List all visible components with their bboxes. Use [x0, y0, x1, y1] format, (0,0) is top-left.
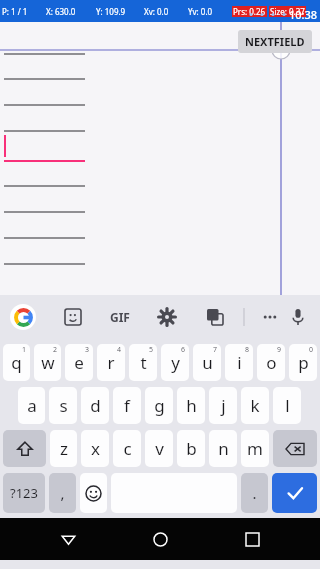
button[interactable]: d	[81, 387, 109, 424]
button[interactable]: t	[129, 344, 157, 381]
staticText: i	[237, 351, 242, 374]
staticText: j	[221, 394, 226, 417]
staticText: b	[186, 437, 197, 460]
staticText: Yv: 0.0	[188, 6, 213, 17]
staticText: Size: 0.37	[270, 6, 305, 17]
staticText: u	[202, 351, 213, 374]
button[interactable]: i	[225, 344, 253, 381]
button[interactable]: Back	[44, 518, 92, 560]
staticText: ?123	[10, 484, 38, 502]
button[interactable]: NEXTFIELD	[238, 30, 312, 53]
staticText: h	[186, 394, 197, 417]
staticText: o	[266, 351, 277, 374]
staticText: .	[252, 483, 257, 503]
staticText: 2	[53, 345, 58, 355]
button[interactable]: g	[145, 387, 173, 424]
button[interactable]: GIF	[110, 309, 130, 325]
button[interactable]: e	[65, 344, 93, 381]
button[interactable]: ,	[49, 473, 76, 513]
staticText: y	[171, 351, 180, 374]
staticText: 1	[22, 345, 27, 355]
staticText: l	[285, 394, 290, 417]
button[interactable]: s	[49, 387, 77, 424]
button[interactable]: f	[113, 387, 141, 424]
staticText: 7	[213, 345, 218, 355]
staticText: f	[124, 394, 130, 417]
staticText: w	[41, 351, 55, 374]
staticText: NEXTFIELD	[245, 34, 305, 49]
button[interactable]: Recent apps	[228, 518, 276, 560]
button[interactable]	[273, 430, 317, 467]
button[interactable]: More options	[259, 306, 281, 328]
staticText: 4	[117, 345, 122, 355]
button[interactable]: .	[241, 473, 268, 513]
button[interactable]: z	[50, 430, 77, 467]
staticText: m	[247, 437, 263, 460]
button[interactable]: Voice input	[286, 305, 310, 329]
staticText: d	[90, 394, 101, 417]
staticText: P: 1 / 1	[2, 6, 28, 17]
staticText: k	[250, 394, 260, 417]
button[interactable]: Stickers	[62, 306, 84, 328]
button[interactable]: h	[177, 387, 205, 424]
staticText: GIF	[110, 309, 130, 325]
button[interactable]: Translate	[204, 306, 226, 328]
button[interactable]: b	[177, 430, 205, 467]
staticText: q	[11, 351, 22, 374]
staticText: x	[91, 437, 100, 460]
staticText: g	[154, 394, 165, 417]
button[interactable]: Home	[136, 518, 184, 560]
button[interactable]: Google search	[10, 304, 36, 330]
staticText: ,	[60, 483, 65, 503]
button[interactable]: n	[209, 430, 237, 467]
button[interactable]: l	[273, 387, 301, 424]
staticText: Prs: 0.26	[233, 6, 266, 17]
button[interactable]: u	[193, 344, 221, 381]
button[interactable]	[3, 430, 46, 467]
staticText: 9	[277, 345, 282, 355]
staticText: Y: 109.9	[96, 6, 126, 17]
button[interactable]: j	[209, 387, 237, 424]
button[interactable]: p	[289, 344, 317, 381]
staticText: z	[60, 437, 68, 460]
button[interactable]: ?123	[3, 473, 45, 513]
button[interactable]: w	[34, 344, 61, 381]
button[interactable]: x	[81, 430, 109, 467]
staticText: 5	[149, 345, 154, 355]
staticText: Xv: 0.0	[144, 6, 169, 17]
staticText: c	[123, 437, 132, 460]
staticText: e	[74, 351, 84, 374]
button[interactable]: m	[241, 430, 269, 467]
button[interactable]: y	[161, 344, 189, 381]
staticText: t	[140, 351, 147, 374]
staticText: n	[218, 437, 229, 460]
button[interactable]	[80, 473, 107, 513]
staticText: 10:38	[289, 7, 318, 22]
button[interactable]: o	[257, 344, 285, 381]
staticText: 8	[245, 345, 250, 355]
button[interactable]	[272, 473, 317, 513]
button[interactable]: k	[241, 387, 269, 424]
staticText: 6	[181, 345, 186, 355]
button[interactable]: v	[145, 430, 173, 467]
staticText: 0	[309, 345, 314, 355]
button[interactable]: q	[3, 344, 30, 381]
staticText: a	[27, 394, 37, 417]
button[interactable]: r	[97, 344, 125, 381]
staticText: s	[59, 394, 68, 417]
button[interactable]: a	[18, 387, 45, 424]
staticText: r	[107, 351, 115, 374]
staticText: p	[298, 351, 309, 374]
staticText: 3	[85, 345, 90, 355]
button[interactable]: Settings	[156, 306, 178, 328]
button[interactable]: c	[113, 430, 141, 467]
staticText: v	[155, 437, 164, 460]
staticText: X: 630.0	[46, 6, 76, 17]
